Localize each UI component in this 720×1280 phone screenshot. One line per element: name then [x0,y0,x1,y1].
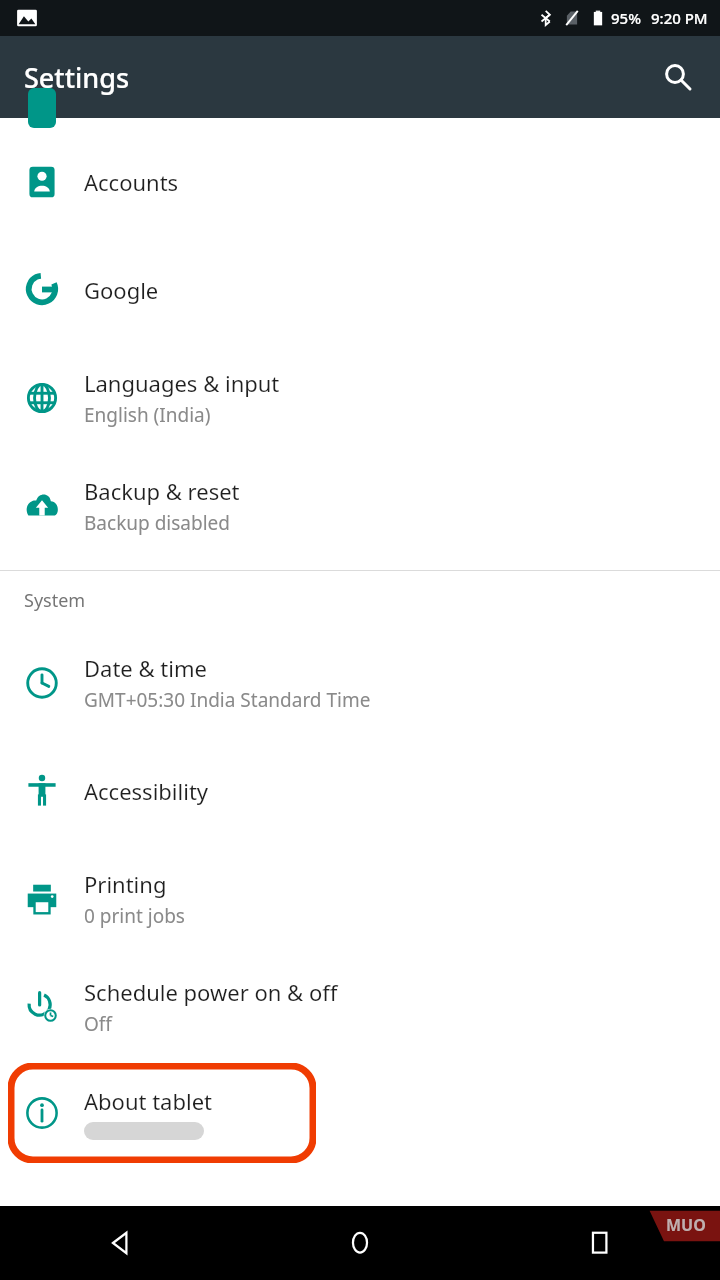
button[interactable] [8,1063,316,1163]
button[interactable]: Home [240,1206,480,1280]
staticText: 95% [611,8,641,28]
staticText: Accessibility [84,776,209,806]
button[interactable]: Search [650,49,706,105]
staticText: Backup & reset [84,476,240,506]
button[interactable]: Backup & reset [0,452,720,560]
staticText: System [24,588,86,613]
staticText: English (India) [84,402,211,428]
staticText: About tablet [84,1086,212,1116]
staticText: GMT+05:30 India Standard Time [84,687,371,713]
staticText: Date & time [84,653,207,683]
staticText: Settings [24,59,130,96]
staticText: Backup disabled [84,510,230,536]
staticText: Printing [84,869,167,899]
staticText: 0 print jobs [84,903,185,929]
staticText: Off [84,1011,112,1037]
staticText: Languages & input [84,368,280,398]
button[interactable]: Back [0,1206,240,1280]
staticText: Schedule power on & off [84,977,338,1007]
button[interactable]: Recents [480,1206,720,1280]
button[interactable]: Date & time [0,629,720,737]
button[interactable]: Printing [0,845,720,953]
button[interactable]: Google [0,236,720,344]
button[interactable]: Schedule power on & off [0,953,720,1061]
button[interactable]: Accounts [0,128,720,236]
staticText: Google [84,275,159,305]
staticText: Accounts [84,167,179,197]
button[interactable]: Accessibility [0,737,720,845]
staticText: MUO [666,1214,706,1236]
button[interactable]: Languages & input [0,344,720,452]
staticText: 9:20 PM [651,8,708,28]
